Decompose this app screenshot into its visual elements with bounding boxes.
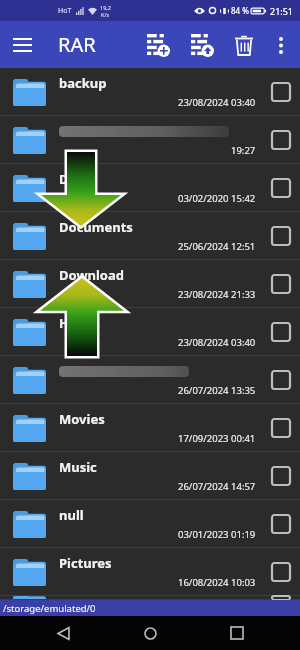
staticText: 21:51 (270, 5, 294, 17)
button[interactable]: Back (39, 616, 87, 650)
staticText: Movies (59, 410, 105, 428)
button[interactable]: Add to archive (136, 23, 180, 67)
button[interactable]: Select item (262, 548, 300, 596)
button[interactable]: Music (0, 452, 300, 500)
button[interactable]: Select item (262, 404, 300, 452)
staticText: Pictures (59, 554, 112, 572)
staticText: 03/02/2020 15:42 (178, 192, 256, 205)
staticText: 23/08/2024 03:40 (178, 96, 256, 109)
button[interactable]: Open navigation menu (0, 23, 44, 67)
button[interactable]: 19:27 (0, 116, 300, 164)
staticText: 26/07/2024 13:35 (178, 384, 256, 397)
button[interactable]: Select item (262, 500, 300, 548)
staticText: K/s (101, 11, 110, 18)
staticText: 84 % (231, 5, 249, 16)
button[interactable]: Pictures (0, 548, 300, 596)
button[interactable]: Recent apps (213, 616, 261, 650)
button[interactable]: DCIM (0, 164, 300, 212)
staticText: 16/08/2024 10:03 (178, 576, 256, 589)
button[interactable]: Download (0, 260, 300, 308)
button[interactable]: Movies (0, 404, 300, 452)
staticText: RAR (58, 31, 96, 58)
button[interactable]: Documents (0, 212, 300, 260)
staticText: Download (59, 266, 124, 284)
staticText: H (59, 314, 69, 332)
button[interactable]: H (0, 308, 300, 356)
staticText: 03/01/2023 01:19 (178, 528, 256, 541)
button[interactable]: 26/07/2024 13:35 (0, 356, 300, 404)
staticText: 19:27 (231, 144, 256, 157)
button[interactable]: Select item (262, 212, 300, 260)
staticText: 19,2 (100, 4, 111, 11)
staticText: 17/09/2023 00:41 (178, 432, 256, 445)
button[interactable]: null (0, 500, 300, 548)
staticText: /storage/emulated/0 (3, 602, 96, 615)
button[interactable]: Select item (262, 356, 300, 404)
button[interactable]: Extract archive (180, 23, 224, 67)
staticText: 25/06/2024 12:51 (178, 240, 256, 253)
button[interactable]: Select item (262, 116, 300, 164)
button[interactable]: Select item (262, 596, 300, 600)
button[interactable]: Select item (262, 68, 300, 116)
button[interactable]: Home (126, 616, 174, 650)
staticText: Documents (59, 218, 133, 236)
button[interactable]: Select item (262, 452, 300, 500)
staticText: 23/08/2024 21:33 (178, 288, 256, 301)
button[interactable]: More options (264, 28, 298, 62)
staticText: null (59, 506, 84, 524)
staticText: 26/07/2024 14:57 (178, 480, 256, 493)
button[interactable]: backup (0, 68, 300, 116)
button[interactable]: Select item (262, 164, 300, 212)
staticText: Music (59, 458, 97, 476)
staticText: DCIM (59, 170, 95, 188)
button[interactable]: Select item (262, 260, 300, 308)
button[interactable]: Delete (224, 25, 264, 65)
button[interactable]: Select item (262, 308, 300, 356)
button[interactable]: R36S (0, 596, 300, 600)
staticText: 23/08/2024 03:40 (178, 336, 256, 349)
staticText: backup (59, 74, 107, 92)
staticText: HoT (58, 6, 72, 16)
